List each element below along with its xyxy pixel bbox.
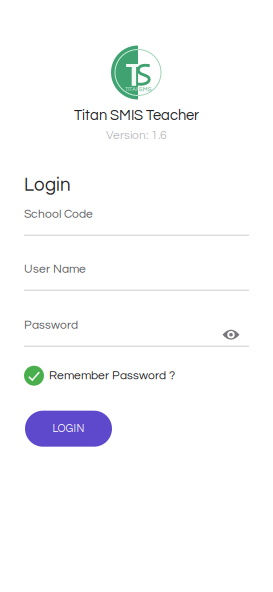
- staticText: SMS: [139, 86, 152, 93]
- staticText: User Name: [24, 263, 86, 275]
- staticText: Remember Password ?: [49, 369, 175, 382]
- staticText: LOGIN: [52, 423, 84, 434]
- button[interactable]: Remember Password ?: [24, 366, 249, 386]
- staticText: School Code: [24, 208, 93, 220]
- staticText: Password: [24, 319, 78, 331]
- staticText: Version: 1.6: [106, 129, 167, 141]
- staticText: Login: [24, 175, 71, 195]
- staticText: Titan SMIS Teacher: [74, 108, 199, 123]
- staticText: TITAN: [125, 86, 140, 93]
- button[interactable]: Show password: [217, 322, 245, 348]
- button[interactable]: LOGIN: [25, 411, 112, 447]
